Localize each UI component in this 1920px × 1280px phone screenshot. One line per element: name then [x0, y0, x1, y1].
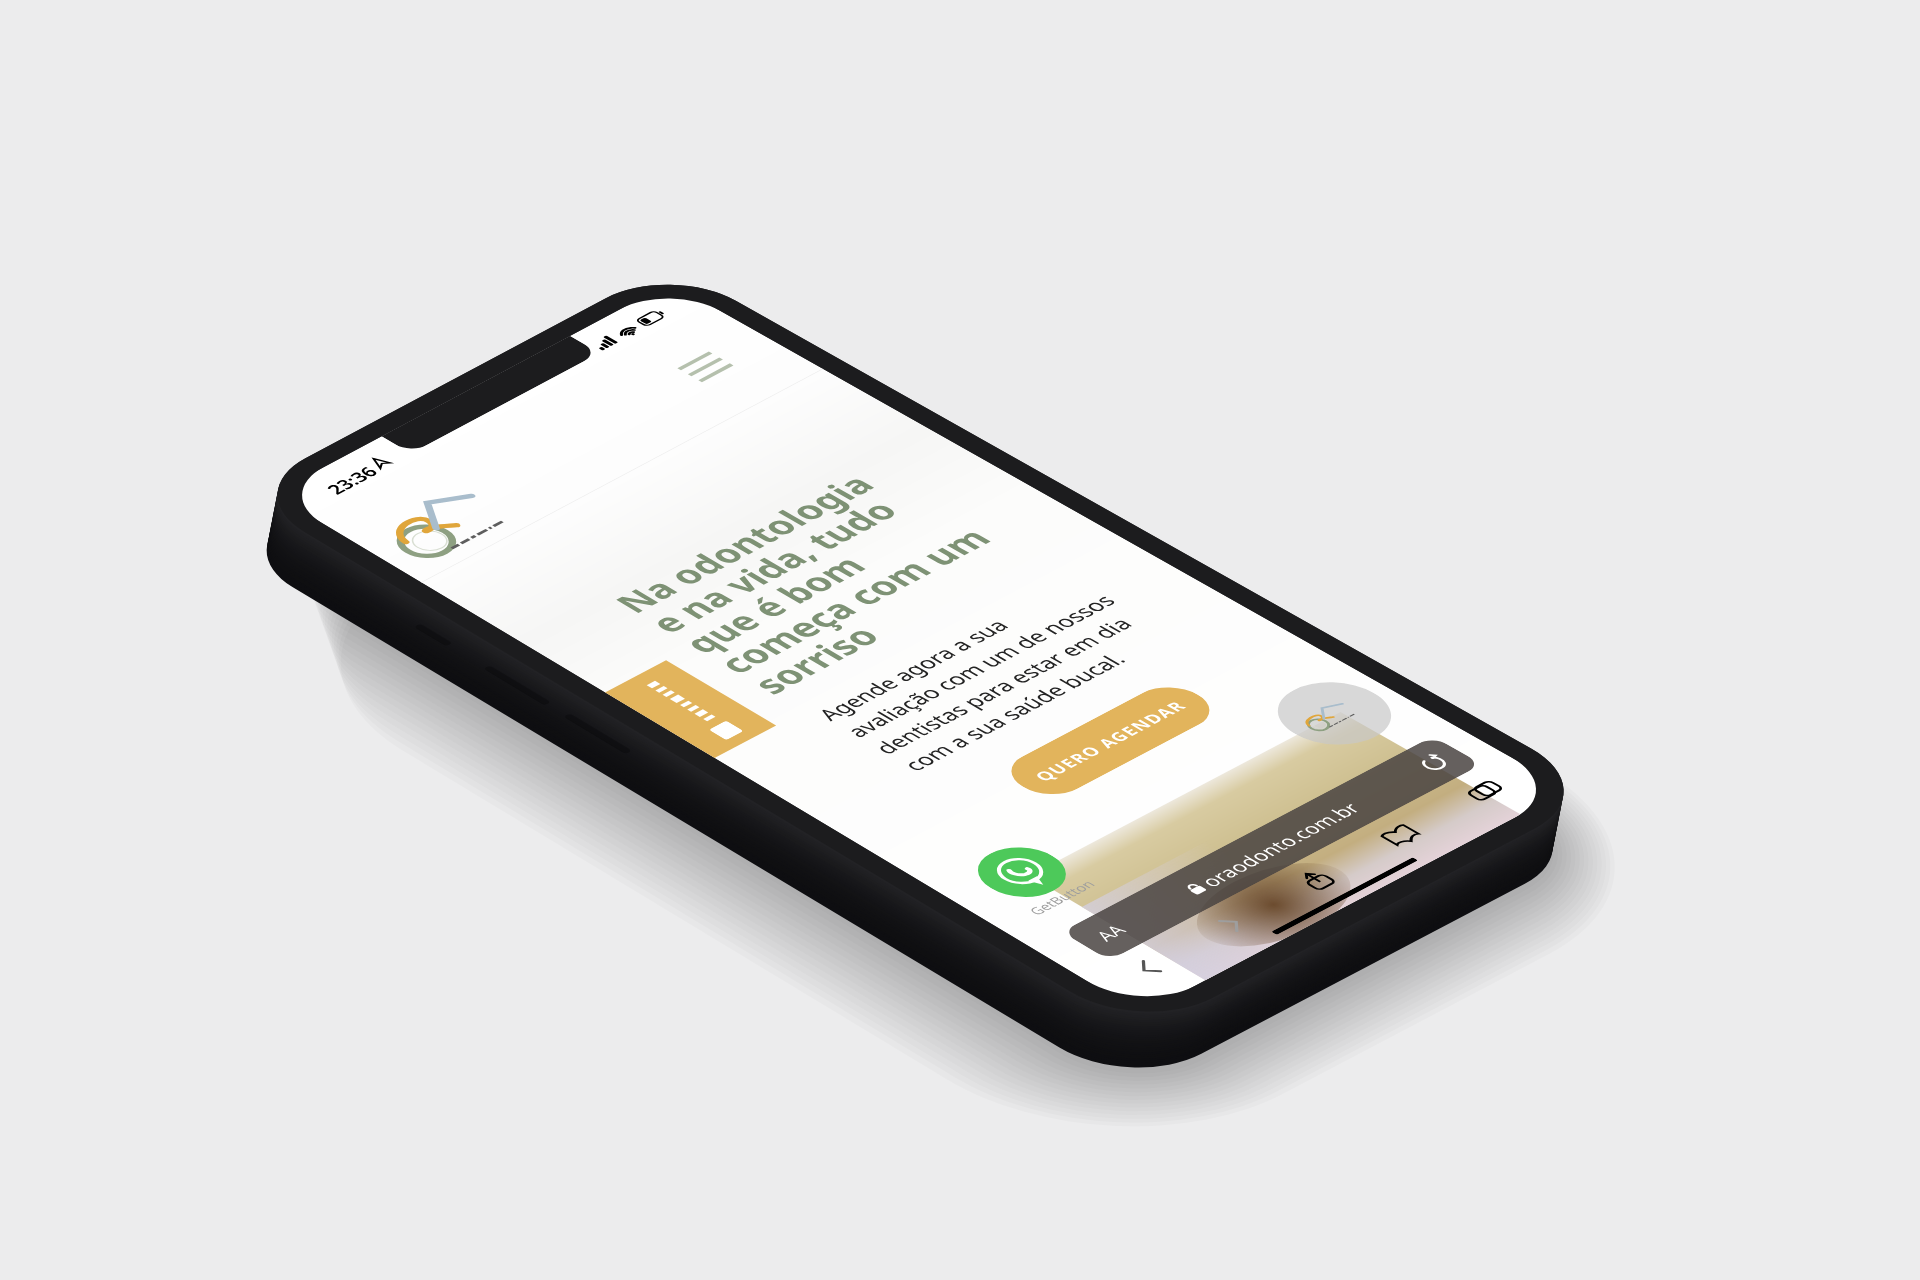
staticText: Agende agora a sua avaliação com um de n… — [128, 622, 548, 771]
staticText: Na odontologia e na vida, tudo que é bom… — [118, 348, 548, 594]
